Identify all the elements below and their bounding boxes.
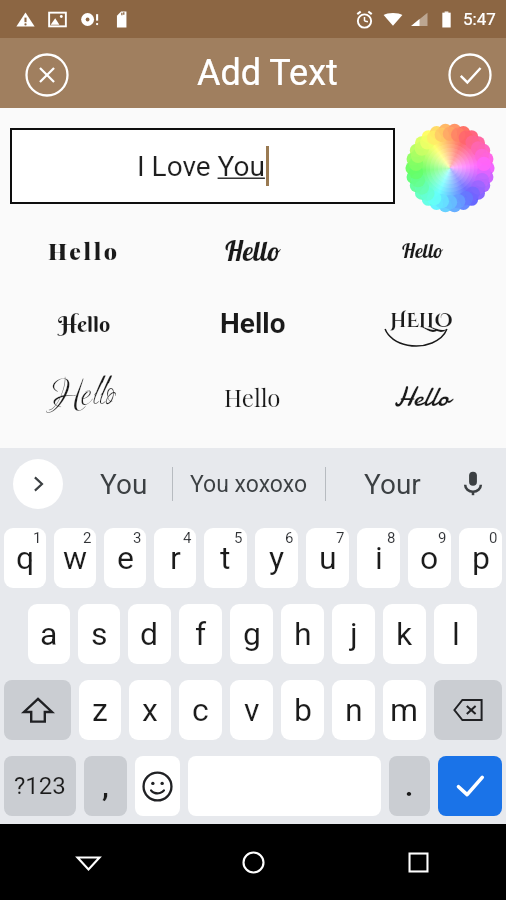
staticText: 2: [83, 529, 92, 547]
button[interactable]: m: [383, 680, 426, 740]
button[interactable]: Hello: [337, 360, 506, 433]
staticText: 6: [285, 529, 294, 547]
staticText: Hello: [220, 307, 286, 340]
button[interactable]: s: [78, 604, 120, 664]
button[interactable]: l: [434, 604, 477, 664]
staticText: 4: [183, 529, 192, 547]
staticText: 3: [133, 529, 142, 547]
staticText: 1: [33, 529, 42, 547]
button[interactable]: Shift: [4, 680, 71, 740]
button[interactable]: Your: [326, 448, 458, 520]
button[interactable]: You: [75, 448, 172, 520]
button[interactable]: Hello: [0, 360, 168, 433]
staticText: v: [244, 691, 260, 729]
button[interactable]: Hello: [0, 214, 168, 287]
button[interactable]: Period: [389, 756, 430, 816]
staticText: w: [63, 539, 88, 577]
button[interactable]: Backspace: [434, 680, 502, 740]
staticText: u: [319, 539, 337, 577]
staticText: ?123: [14, 772, 66, 800]
button[interactable]: y: [255, 528, 298, 588]
button[interactable]: I Love You: [10, 128, 395, 204]
button[interactable]: o: [408, 528, 451, 588]
staticText: 7: [336, 529, 345, 547]
button[interactable]: d: [128, 604, 171, 664]
button[interactable]: Hello: [0, 287, 168, 360]
staticText: a: [40, 615, 58, 653]
button[interactable]: v: [230, 680, 273, 740]
staticText: HELLO: [390, 308, 453, 334]
button[interactable]: t: [204, 528, 247, 588]
staticText: s: [91, 615, 108, 653]
button[interactable]: h: [281, 604, 324, 664]
button[interactable]: f: [179, 604, 222, 664]
staticText: Hello: [48, 235, 120, 266]
button[interactable]: w: [54, 528, 96, 588]
button[interactable]: c: [179, 680, 222, 740]
staticText: c: [192, 691, 209, 729]
button[interactable]: n: [332, 680, 375, 740]
button[interactable]: j: [332, 604, 375, 664]
button[interactable]: Hello: [168, 287, 337, 360]
staticText: n: [345, 691, 363, 729]
button[interactable]: Home: [229, 838, 277, 886]
staticText: l: [452, 615, 460, 653]
button[interactable]: Hello: [168, 214, 337, 287]
button[interactable]: x: [129, 680, 171, 740]
button[interactable]: p: [459, 528, 502, 588]
button[interactable]: Comma: [84, 756, 127, 816]
staticText: 9: [438, 529, 447, 547]
button[interactable]: Hello: [168, 360, 337, 433]
staticText: g: [243, 615, 261, 653]
staticText: Your: [364, 468, 421, 501]
staticText: Hello: [224, 381, 281, 413]
staticText: d: [140, 615, 159, 653]
button[interactable]: Pick color: [405, 123, 495, 213]
staticText: f: [195, 615, 207, 653]
button[interactable]: Voice input: [450, 461, 496, 507]
button[interactable]: HELLO: [337, 287, 506, 360]
staticText: h: [294, 615, 312, 653]
button[interactable]: More suggestions: [13, 459, 63, 509]
staticText: r: [170, 539, 181, 577]
staticText: You xoxoxo: [190, 471, 308, 498]
button[interactable]: i: [357, 528, 400, 588]
button[interactable]: Symbols: [4, 756, 76, 816]
staticText: You: [100, 468, 148, 501]
button[interactable]: Close: [21, 49, 73, 101]
staticText: 0: [489, 529, 498, 547]
button[interactable]: Emoji: [135, 756, 180, 816]
button[interactable]: r: [154, 528, 196, 588]
staticText: .: [405, 770, 414, 803]
button[interactable]: k: [383, 604, 426, 664]
staticText: x: [142, 691, 158, 729]
staticText: p: [472, 539, 490, 577]
button[interactable]: b: [281, 680, 324, 740]
button[interactable]: q: [4, 528, 46, 588]
button[interactable]: g: [230, 604, 273, 664]
button[interactable]: Enter: [438, 756, 502, 816]
button[interactable]: u: [306, 528, 349, 588]
staticText: 5: [234, 529, 243, 547]
staticText: Add Text: [197, 52, 338, 94]
button[interactable]: z: [79, 680, 121, 740]
button[interactable]: You xoxoxo: [173, 448, 325, 520]
button[interactable]: Hello: [337, 214, 506, 287]
button[interactable]: e: [104, 528, 146, 588]
staticText: o: [420, 539, 439, 577]
staticText: t: [220, 539, 231, 577]
staticText: q: [16, 539, 35, 577]
button[interactable]: Recents: [394, 838, 442, 886]
staticText: Hello: [394, 378, 450, 416]
button[interactable]: Done: [444, 49, 496, 101]
staticText: z: [92, 691, 108, 729]
staticText: y: [269, 539, 285, 577]
staticText: k: [396, 615, 413, 653]
button[interactable]: a: [28, 604, 70, 664]
staticText: Hello: [58, 310, 111, 337]
staticText: Hello: [401, 238, 443, 263]
staticText: e: [117, 539, 134, 577]
button[interactable]: Back: [64, 838, 112, 886]
staticText: 5:47: [463, 9, 496, 29]
